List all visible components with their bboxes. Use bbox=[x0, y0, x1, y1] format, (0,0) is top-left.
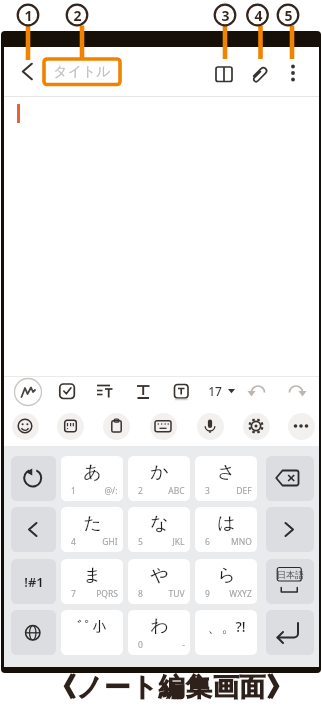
staticText: JKL bbox=[172, 536, 185, 548]
button[interactable] bbox=[281, 61, 305, 85]
button[interactable] bbox=[103, 413, 130, 440]
button[interactable] bbox=[212, 62, 236, 86]
staticText: - bbox=[182, 639, 185, 651]
staticText: は bbox=[217, 512, 236, 535]
staticText: 2 bbox=[73, 6, 82, 25]
button[interactable]: は bbox=[195, 507, 257, 552]
button[interactable] bbox=[17, 378, 43, 404]
button[interactable] bbox=[11, 610, 56, 655]
button[interactable] bbox=[130, 378, 156, 404]
staticText: 1 bbox=[24, 6, 33, 25]
staticText: な bbox=[150, 512, 169, 535]
staticText: ら bbox=[217, 564, 236, 587]
button[interactable] bbox=[288, 413, 315, 440]
button[interactable] bbox=[12, 413, 39, 440]
staticText: あ bbox=[83, 461, 102, 484]
staticText: 4 bbox=[254, 6, 263, 25]
button[interactable] bbox=[54, 378, 80, 404]
button[interactable] bbox=[266, 559, 314, 604]
button[interactable]: わ bbox=[128, 610, 190, 655]
button[interactable] bbox=[248, 62, 272, 86]
staticText: 5 bbox=[138, 536, 143, 548]
staticText: 0 bbox=[138, 639, 143, 651]
staticText: GHI bbox=[102, 536, 118, 548]
staticText: !#1 bbox=[24, 573, 44, 591]
button[interactable] bbox=[150, 413, 177, 440]
button[interactable] bbox=[197, 413, 224, 440]
staticText: 《ノート編集画面》 bbox=[49, 671, 294, 704]
staticText: さ bbox=[217, 461, 236, 484]
staticText: 2 bbox=[138, 485, 143, 497]
button[interactable] bbox=[168, 378, 194, 404]
staticText: WXYZ bbox=[229, 588, 252, 600]
button[interactable] bbox=[204, 378, 230, 404]
button[interactable] bbox=[246, 378, 272, 404]
button[interactable]: 、。?! bbox=[195, 610, 257, 655]
button[interactable] bbox=[11, 456, 56, 501]
button[interactable] bbox=[11, 507, 56, 552]
staticText: 9 bbox=[205, 588, 210, 600]
button[interactable] bbox=[266, 610, 314, 655]
staticText: タイトル bbox=[53, 63, 111, 81]
button[interactable]: な bbox=[128, 507, 190, 552]
staticText: 4 bbox=[71, 536, 76, 548]
staticText: た bbox=[83, 512, 102, 535]
button[interactable]: さ bbox=[195, 456, 257, 501]
button[interactable] bbox=[57, 413, 84, 440]
staticText: 8 bbox=[138, 588, 143, 600]
staticText: 6 bbox=[205, 536, 210, 548]
button[interactable]: ﾞﾟ小 bbox=[61, 610, 123, 655]
staticText: MNO bbox=[231, 536, 252, 548]
staticText: 1 bbox=[71, 485, 76, 497]
staticText: や bbox=[150, 564, 169, 587]
staticText: ABC bbox=[168, 485, 185, 497]
staticText: ま bbox=[83, 564, 102, 587]
staticText: DEF bbox=[236, 485, 252, 497]
button[interactable] bbox=[11, 559, 56, 604]
staticText: 7 bbox=[71, 588, 76, 600]
staticText: @/: bbox=[104, 485, 118, 497]
staticText: 3 bbox=[205, 485, 210, 497]
button[interactable]: た bbox=[61, 507, 123, 552]
button[interactable]: や bbox=[128, 559, 190, 604]
button[interactable] bbox=[92, 378, 118, 404]
button[interactable] bbox=[266, 456, 314, 501]
staticText: 5 bbox=[284, 6, 293, 25]
button[interactable] bbox=[283, 378, 309, 404]
button[interactable] bbox=[243, 413, 270, 440]
staticText: TUV bbox=[168, 588, 185, 600]
button[interactable] bbox=[266, 507, 314, 552]
button[interactable]: ら bbox=[195, 559, 257, 604]
staticText: 、。?! bbox=[207, 617, 246, 636]
staticText: PQRS bbox=[96, 588, 118, 600]
button[interactable]: あ bbox=[61, 456, 123, 501]
staticText: 日本語 bbox=[277, 569, 304, 580]
staticText: 3 bbox=[221, 6, 230, 25]
button[interactable]: ま bbox=[61, 559, 123, 604]
staticText: ﾞﾟ小 bbox=[77, 619, 107, 634]
staticText: わ bbox=[150, 615, 169, 638]
button[interactable]: タイトル bbox=[44, 59, 120, 85]
button[interactable]: か bbox=[128, 456, 190, 501]
button[interactable] bbox=[15, 59, 39, 83]
staticText: 17 bbox=[208, 383, 222, 399]
staticText: か bbox=[150, 461, 169, 484]
